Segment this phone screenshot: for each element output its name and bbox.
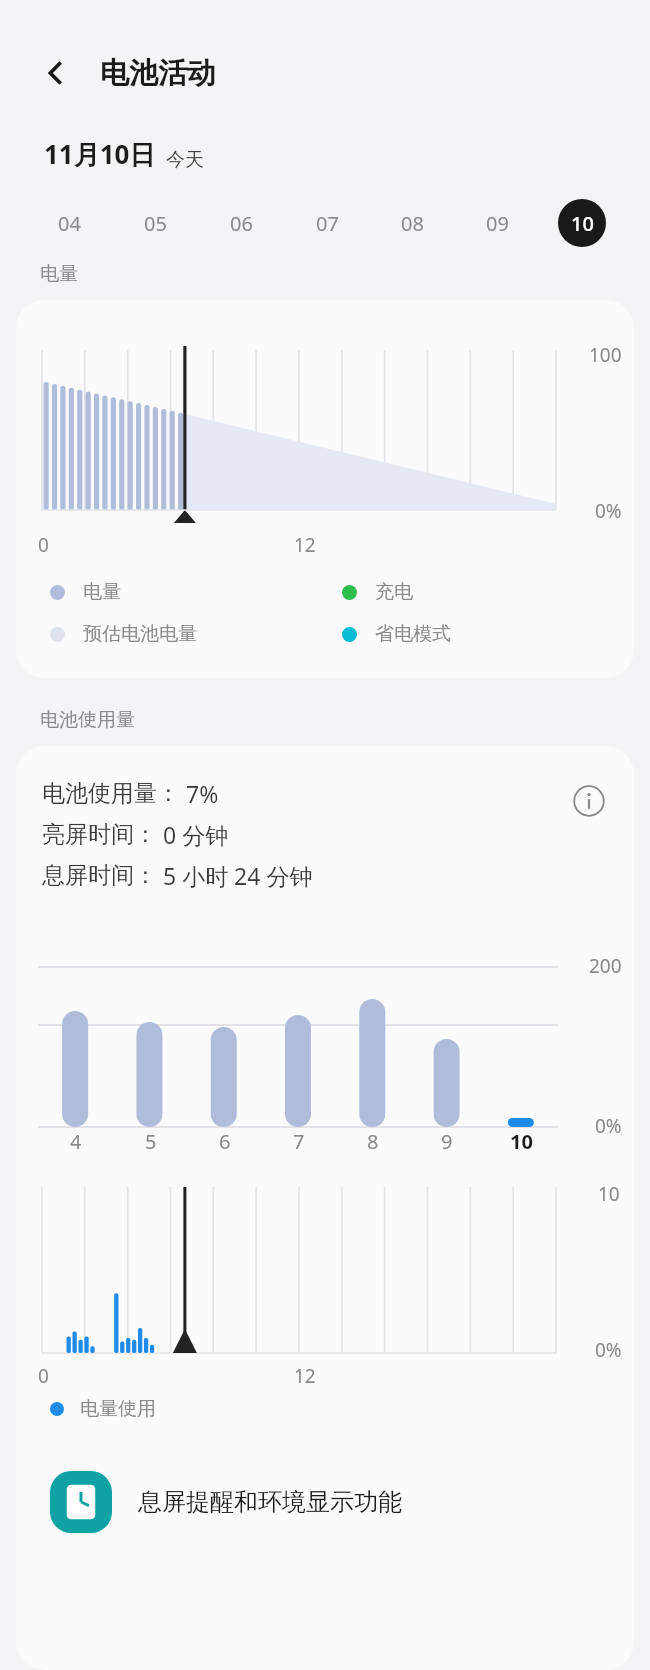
staticText: 省电模式 [375, 622, 451, 646]
staticText: 0% [595, 1337, 622, 1363]
staticText: 04 [58, 210, 81, 237]
button[interactable]: 06 [198, 194, 284, 252]
staticText: 7 [293, 1128, 305, 1155]
staticText: 9 [441, 1128, 453, 1155]
button[interactable]: 05 [112, 194, 198, 252]
staticText: 电量 [40, 262, 78, 286]
staticText: 息屏时间： [42, 861, 157, 890]
staticText: 12 [294, 532, 316, 558]
staticText: 8 [367, 1128, 379, 1155]
staticText: 电池使用量 [40, 708, 135, 732]
button[interactable]: 07 [284, 194, 369, 252]
staticText: 息屏提醒和环境显示功能 [138, 1487, 402, 1517]
button[interactable]: 息屏提醒和环境显示功能 [16, 1459, 634, 1545]
staticText: 0 [38, 1363, 49, 1389]
staticText: 5 [145, 1128, 157, 1155]
staticText: 10 [571, 210, 594, 237]
staticText: 08 [401, 210, 424, 237]
staticText: 0 [38, 532, 49, 558]
button[interactable]: 08 [369, 194, 454, 252]
staticText: 05 [144, 210, 167, 237]
button[interactable]: 04 [26, 194, 112, 252]
staticText: 0 分钟 [163, 819, 229, 850]
staticText: 6 [219, 1128, 231, 1155]
staticText: 电池活动 [100, 55, 216, 92]
staticText: 4 [70, 1128, 82, 1155]
staticText: 06 [230, 210, 253, 237]
staticText: 07 [316, 210, 339, 237]
button[interactable]: 100 [16, 300, 634, 678]
staticText: 充电 [375, 580, 413, 604]
staticText: 预估电池电量 [83, 622, 197, 646]
staticText: 09 [486, 210, 509, 237]
staticText: 7% [186, 778, 219, 809]
button[interactable]: Back [30, 47, 82, 99]
staticText: 10 [598, 1181, 620, 1207]
button[interactable]: 10 [539, 194, 624, 252]
staticText: 今天 [166, 148, 204, 172]
staticText: 11月10日 [44, 136, 156, 172]
staticText: 5 小时 24 分钟 [163, 860, 313, 891]
button[interactable]: Info [566, 778, 612, 824]
staticText: 亮屏时间： [42, 820, 157, 849]
staticText: 200 [589, 953, 622, 979]
staticText: 12 [294, 1363, 316, 1389]
staticText: 电量使用 [80, 1397, 156, 1421]
staticText: 0% [595, 498, 622, 524]
staticText: 0% [595, 1113, 622, 1139]
staticText: 电量 [83, 580, 121, 604]
staticText: 电池使用量： [42, 779, 180, 808]
button[interactable]: 09 [454, 194, 539, 252]
staticText: 10 [510, 1128, 533, 1155]
staticText: 100 [589, 342, 622, 368]
